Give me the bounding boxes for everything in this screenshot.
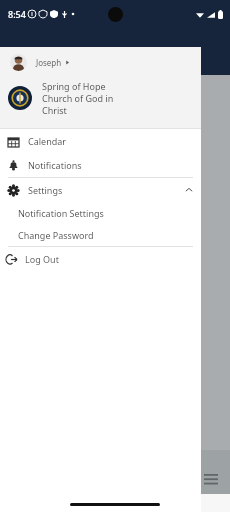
button[interactable]: Joseph xyxy=(0,47,201,78)
button[interactable]: Log Out xyxy=(0,247,201,271)
staticText: Notifications xyxy=(28,159,82,171)
staticText: Church of God in xyxy=(42,92,114,104)
staticText: Joseph xyxy=(36,57,62,68)
button[interactable]: Change Password xyxy=(0,224,201,246)
button[interactable]: Settings xyxy=(0,178,201,202)
staticText: Christ xyxy=(42,104,67,116)
other: Collapse xyxy=(185,186,193,194)
button[interactable]: Spring of Hope xyxy=(0,78,201,128)
button[interactable]: Notification Settings xyxy=(0,202,201,224)
staticText: Change Password xyxy=(18,229,94,241)
staticText: Spring of Hope xyxy=(42,80,106,92)
staticText: 8:54 xyxy=(8,8,26,20)
staticText: Settings xyxy=(28,184,185,196)
button[interactable]: Calendar xyxy=(0,129,201,153)
button[interactable]: Notifications xyxy=(0,153,201,177)
staticText: Notification Settings xyxy=(18,207,104,219)
staticText: Calendar xyxy=(28,135,66,147)
staticText: Log Out xyxy=(25,253,59,265)
